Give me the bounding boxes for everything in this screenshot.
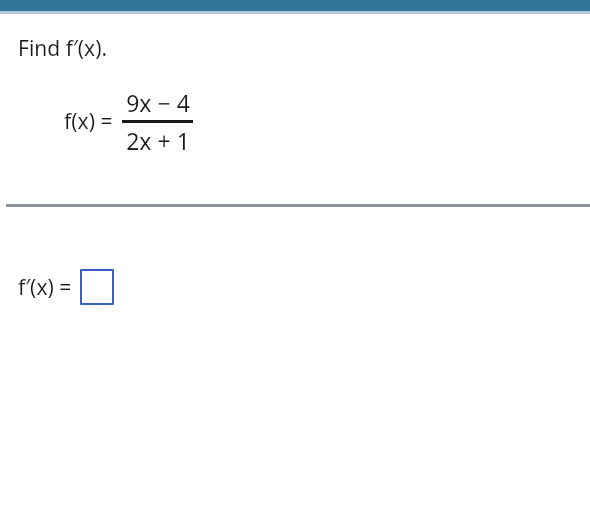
button[interactable]: Answer input field: [80, 269, 114, 305]
staticText: Find f′(x).: [18, 34, 108, 63]
staticText: f′(x) =: [18, 273, 72, 302]
staticText: f(x) =: [64, 107, 113, 136]
staticText: 2x + 1: [126, 125, 190, 156]
staticText: 9x − 4: [126, 87, 190, 118]
